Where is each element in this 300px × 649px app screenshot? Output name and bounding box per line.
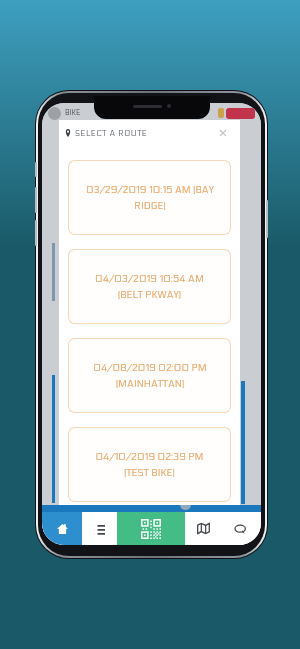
button[interactable]: Map xyxy=(185,512,222,545)
staticText: 04/08/2019 02:00 PM (MAINHATTAN) xyxy=(93,362,207,390)
staticText: 04/03/2019 10:54 AM (BELT PKWAY) xyxy=(95,273,204,301)
button[interactable]: List xyxy=(82,512,117,545)
staticText: BIKE xyxy=(65,109,81,117)
staticText: SELECT A ROUTE xyxy=(75,129,148,138)
staticText: 03/29/2019 10:15 AM (BAY RIDGE) xyxy=(86,184,214,212)
button[interactable]: Chat xyxy=(222,512,259,545)
button[interactable]: Scan xyxy=(117,512,185,545)
staticText: 04/10/2019 02:39 PM (TEST BIKE) xyxy=(95,451,204,479)
button[interactable]: Close xyxy=(215,125,231,141)
button[interactable]: 03/29/2019 10:15 AM (BAY RIDGE) xyxy=(68,160,231,235)
button[interactable]: Home xyxy=(42,512,82,545)
button[interactable]: 04/08/2019 02:00 PM (MAINHATTAN) xyxy=(68,338,231,413)
button[interactable]: 04/03/2019 10:54 AM (BELT PKWAY) xyxy=(68,249,231,324)
button[interactable]: 04/10/2019 02:39 PM (TEST BIKE) xyxy=(68,427,231,502)
